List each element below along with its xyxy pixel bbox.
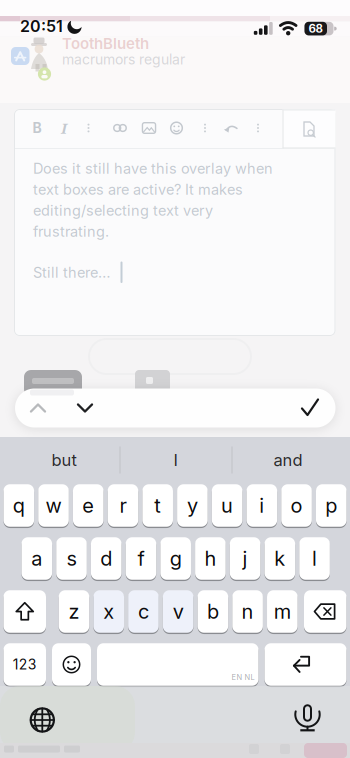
button[interactable]: v — [163, 590, 193, 633]
staticText: I — [61, 118, 67, 138]
button[interactable]: More options — [194, 115, 216, 141]
button[interactable]: a — [21, 537, 52, 580]
staticText: u — [221, 493, 233, 518]
button[interactable]: Numbers — [3, 643, 46, 686]
staticText: q — [13, 493, 25, 518]
staticText: 68 — [309, 22, 323, 35]
button[interactable]: k — [264, 537, 295, 580]
staticText: i — [259, 493, 264, 518]
button[interactable]: Preview — [282, 109, 335, 148]
staticText: g — [170, 546, 182, 571]
staticText: EN NL — [231, 673, 254, 682]
button[interactable]: and — [233, 441, 343, 479]
button[interactable]: g — [160, 537, 191, 580]
button[interactable]: Emoji — [165, 115, 187, 141]
button[interactable]: u — [212, 484, 242, 527]
button[interactable]: I — [120, 441, 231, 479]
staticText: z — [68, 599, 79, 624]
staticText: I — [173, 450, 177, 470]
staticText: 20:51 — [20, 17, 63, 36]
button[interactable]: d — [91, 537, 121, 580]
staticText: x — [103, 599, 114, 624]
staticText: b — [207, 599, 219, 624]
staticText: v — [173, 599, 184, 624]
button[interactable]: o — [281, 484, 312, 527]
button[interactable]: t — [142, 484, 173, 527]
staticText: l — [312, 546, 317, 571]
button[interactable]: c — [128, 590, 159, 633]
button[interactable]: Emoji — [52, 643, 91, 686]
button[interactable]: Bold — [26, 115, 48, 141]
staticText: p — [325, 493, 337, 518]
button[interactable]: j — [230, 537, 260, 580]
staticText: n — [242, 599, 254, 624]
button[interactable]: s — [56, 537, 87, 580]
button[interactable]: Return — [264, 643, 346, 686]
staticText: 123 — [13, 656, 37, 673]
staticText: ToothBlueth — [62, 34, 149, 52]
staticText: f — [137, 546, 144, 571]
button[interactable]: Insert link — [109, 115, 131, 141]
button[interactable]: but — [9, 441, 119, 479]
button[interactable]: Space — [97, 643, 258, 686]
staticText: t — [154, 493, 161, 518]
button[interactable]: z — [59, 590, 89, 633]
button[interactable]: l — [299, 537, 330, 580]
button[interactable]: Shift — [3, 590, 46, 633]
button[interactable]: Delete — [304, 590, 346, 633]
staticText: s — [66, 546, 76, 571]
button[interactable]: f — [126, 537, 156, 580]
staticText: editing/selecting text very — [33, 202, 213, 219]
button[interactable]: n — [232, 590, 263, 633]
button[interactable]: Italic — [53, 115, 75, 141]
button[interactable]: x — [93, 590, 124, 633]
button[interactable]: More tools — [247, 115, 269, 141]
button[interactable]: Insert image — [138, 115, 160, 141]
staticText: h — [204, 546, 216, 571]
button[interactable]: i — [246, 484, 277, 527]
button[interactable]: More formatting — [77, 115, 99, 141]
staticText: but — [51, 450, 76, 470]
staticText: k — [274, 546, 285, 571]
staticText: c — [138, 599, 149, 624]
staticText: Does it still have this overlay when — [33, 160, 273, 177]
staticText: m — [274, 599, 291, 624]
staticText: and — [273, 450, 302, 470]
staticText: o — [291, 493, 303, 518]
button[interactable]: m — [267, 590, 298, 633]
staticText: a — [31, 546, 42, 571]
button[interactable]: Next field — [63, 388, 107, 427]
staticText: text boxes are active? It makes — [33, 181, 243, 198]
button[interactable]: r — [108, 484, 138, 527]
button[interactable]: Switch keyboard — [28, 706, 56, 734]
button[interactable]: b — [198, 590, 228, 633]
staticText: w — [45, 493, 61, 518]
button[interactable]: p — [316, 484, 347, 527]
staticText: Still there… — [33, 264, 111, 281]
button[interactable]: q — [3, 484, 34, 527]
button[interactable]: e — [73, 484, 103, 527]
staticText: d — [100, 546, 112, 571]
staticText: r — [119, 493, 126, 518]
button[interactable]: Previous field — [16, 388, 60, 427]
button[interactable]: w — [38, 484, 69, 527]
button[interactable]: Undo — [220, 115, 242, 141]
staticText: j — [243, 546, 248, 571]
button[interactable]: Dictation — [293, 703, 321, 732]
staticText: macrumors regular — [62, 51, 185, 68]
button[interactable]: h — [195, 537, 226, 580]
button[interactable]: y — [177, 484, 208, 527]
button[interactable]: Done — [288, 388, 332, 427]
staticText: e — [82, 493, 94, 518]
staticText: frustrating. — [33, 223, 109, 240]
staticText: B — [32, 119, 41, 136]
staticText: y — [187, 493, 198, 518]
